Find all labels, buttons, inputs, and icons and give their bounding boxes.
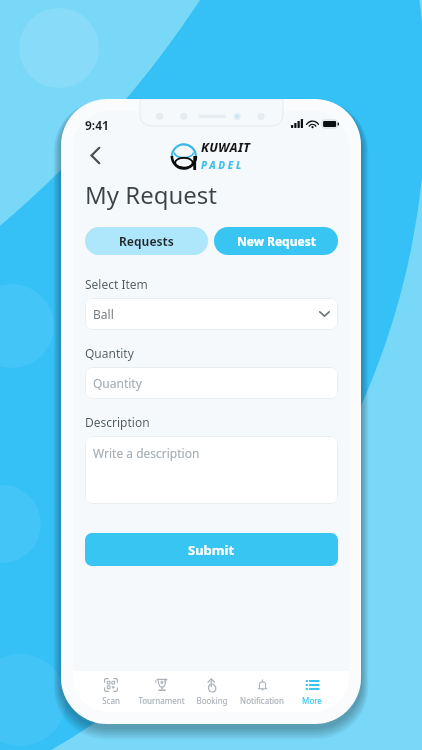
staticText: Ball [93, 306, 114, 322]
staticText: Description [85, 414, 150, 430]
button[interactable]: Back [81, 141, 109, 169]
button[interactable]: Quantity [85, 367, 338, 399]
button[interactable]: More [287, 671, 337, 712]
button[interactable]: Scan [85, 671, 136, 712]
staticText: Booking [196, 695, 228, 706]
staticText: My Request [85, 178, 217, 211]
staticText: PADEL [201, 158, 244, 172]
staticText: Notification [240, 695, 284, 706]
staticText: Requests [119, 233, 174, 249]
button[interactable]: Notification [237, 671, 287, 712]
button[interactable]: Booking [187, 671, 237, 712]
staticText: KUWAIT [201, 139, 251, 156]
staticText: Quantity [85, 345, 134, 361]
staticText: New Request [237, 233, 316, 249]
staticText: More [302, 695, 322, 706]
staticText: Tournament [138, 695, 185, 706]
button[interactable]: New Request [214, 227, 338, 255]
staticText: Scan [102, 695, 120, 706]
staticText: Submit [188, 541, 235, 559]
staticText: 9:41 [85, 117, 109, 133]
button[interactable]: Write a description [85, 436, 338, 504]
staticText: Write a description [93, 445, 200, 461]
button[interactable]: Requests [85, 227, 208, 255]
button[interactable]: Submit [85, 533, 338, 566]
button[interactable]: Ball [85, 298, 338, 330]
button[interactable]: Tournament [136, 671, 187, 712]
staticText: Select Item [85, 276, 148, 292]
staticText: Quantity [93, 375, 142, 391]
